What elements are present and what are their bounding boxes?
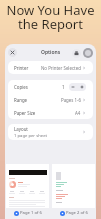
- button[interactable]: Page 1 of 6: [6, 210, 49, 216]
- button[interactable]: [6, 164, 49, 208]
- staticText: Layout: [14, 126, 28, 132]
- staticText: Copies: [14, 84, 28, 90]
- staticText: 1 page per sheet: [14, 133, 48, 139]
- staticText: Range: [14, 97, 28, 103]
- staticText: A4: [75, 110, 81, 116]
- button[interactable]: Print: [72, 49, 81, 58]
- button[interactable]: Increase copies: [77, 83, 86, 91]
- staticText: 1: [62, 84, 65, 90]
- button[interactable]: Paper Size: [8, 106, 93, 119]
- staticText: Options: [41, 49, 61, 56]
- button[interactable]: Decrease copies: [69, 83, 77, 91]
- staticText: Page 1 of 6: [20, 210, 42, 216]
- button[interactable]: [52, 164, 95, 208]
- button[interactable]: Range: [8, 93, 93, 106]
- staticText: Paper Size: [14, 110, 36, 116]
- staticText: Pages 1-6: [61, 97, 81, 103]
- staticText: Printer: [14, 65, 29, 71]
- staticText: Page 2 of 6: [66, 210, 88, 216]
- button[interactable]: Page 2 of 6: [52, 210, 95, 216]
- button[interactable]: Close: [8, 48, 17, 57]
- staticText: Now You Have the Report: [0, 1, 101, 33]
- button[interactable]: Profile: [83, 48, 93, 58]
- staticText: No Printer Selected: [41, 65, 81, 71]
- button[interactable]: Printer: [8, 61, 93, 74]
- button[interactable]: Layout: [8, 124, 93, 140]
